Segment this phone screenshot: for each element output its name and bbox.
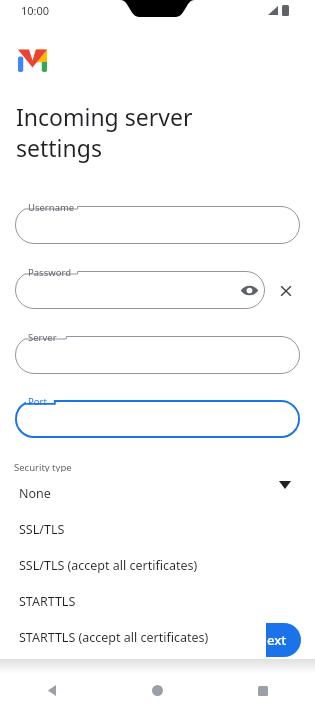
staticText: settings xyxy=(16,132,102,163)
button[interactable]: Next xyxy=(243,623,301,657)
button[interactable]: Username xyxy=(15,206,300,244)
staticText: SSL/TLS (accept all certificates) xyxy=(19,557,198,574)
button[interactable]: Port xyxy=(15,400,300,438)
staticText: None xyxy=(19,485,51,502)
button[interactable]: STARTTLS (accept all certificates) xyxy=(12,619,266,655)
button[interactable]: Home xyxy=(105,675,210,706)
button[interactable]: STARTTLS xyxy=(12,583,266,619)
button[interactable]: SSL/TLS xyxy=(12,511,266,547)
staticText: Server xyxy=(28,331,57,344)
button[interactable]: Password xyxy=(15,271,265,309)
button[interactable]: Recent apps xyxy=(210,675,315,706)
button[interactable]: Clear password xyxy=(277,282,295,300)
staticText: STARTTLS (accept all certificates) xyxy=(19,629,209,646)
staticText: Password xyxy=(28,266,71,279)
button[interactable]: Security type dropdown xyxy=(279,481,291,489)
staticText: 10:00 xyxy=(21,3,50,18)
staticText: STARTTLS xyxy=(19,593,76,610)
button[interactable]: Back xyxy=(0,675,105,706)
button[interactable]: SSL/TLS (accept all certificates) xyxy=(12,547,266,583)
staticText: Port xyxy=(28,395,47,408)
staticText: Next xyxy=(257,631,287,649)
staticText: Username xyxy=(28,201,75,214)
button[interactable]: Server xyxy=(15,336,300,374)
staticText: Incoming server xyxy=(16,101,193,132)
staticText: Security type xyxy=(14,461,72,474)
staticText: SSL/TLS xyxy=(19,521,65,538)
button[interactable]: Show password xyxy=(240,281,259,300)
button[interactable]: None xyxy=(12,475,266,511)
